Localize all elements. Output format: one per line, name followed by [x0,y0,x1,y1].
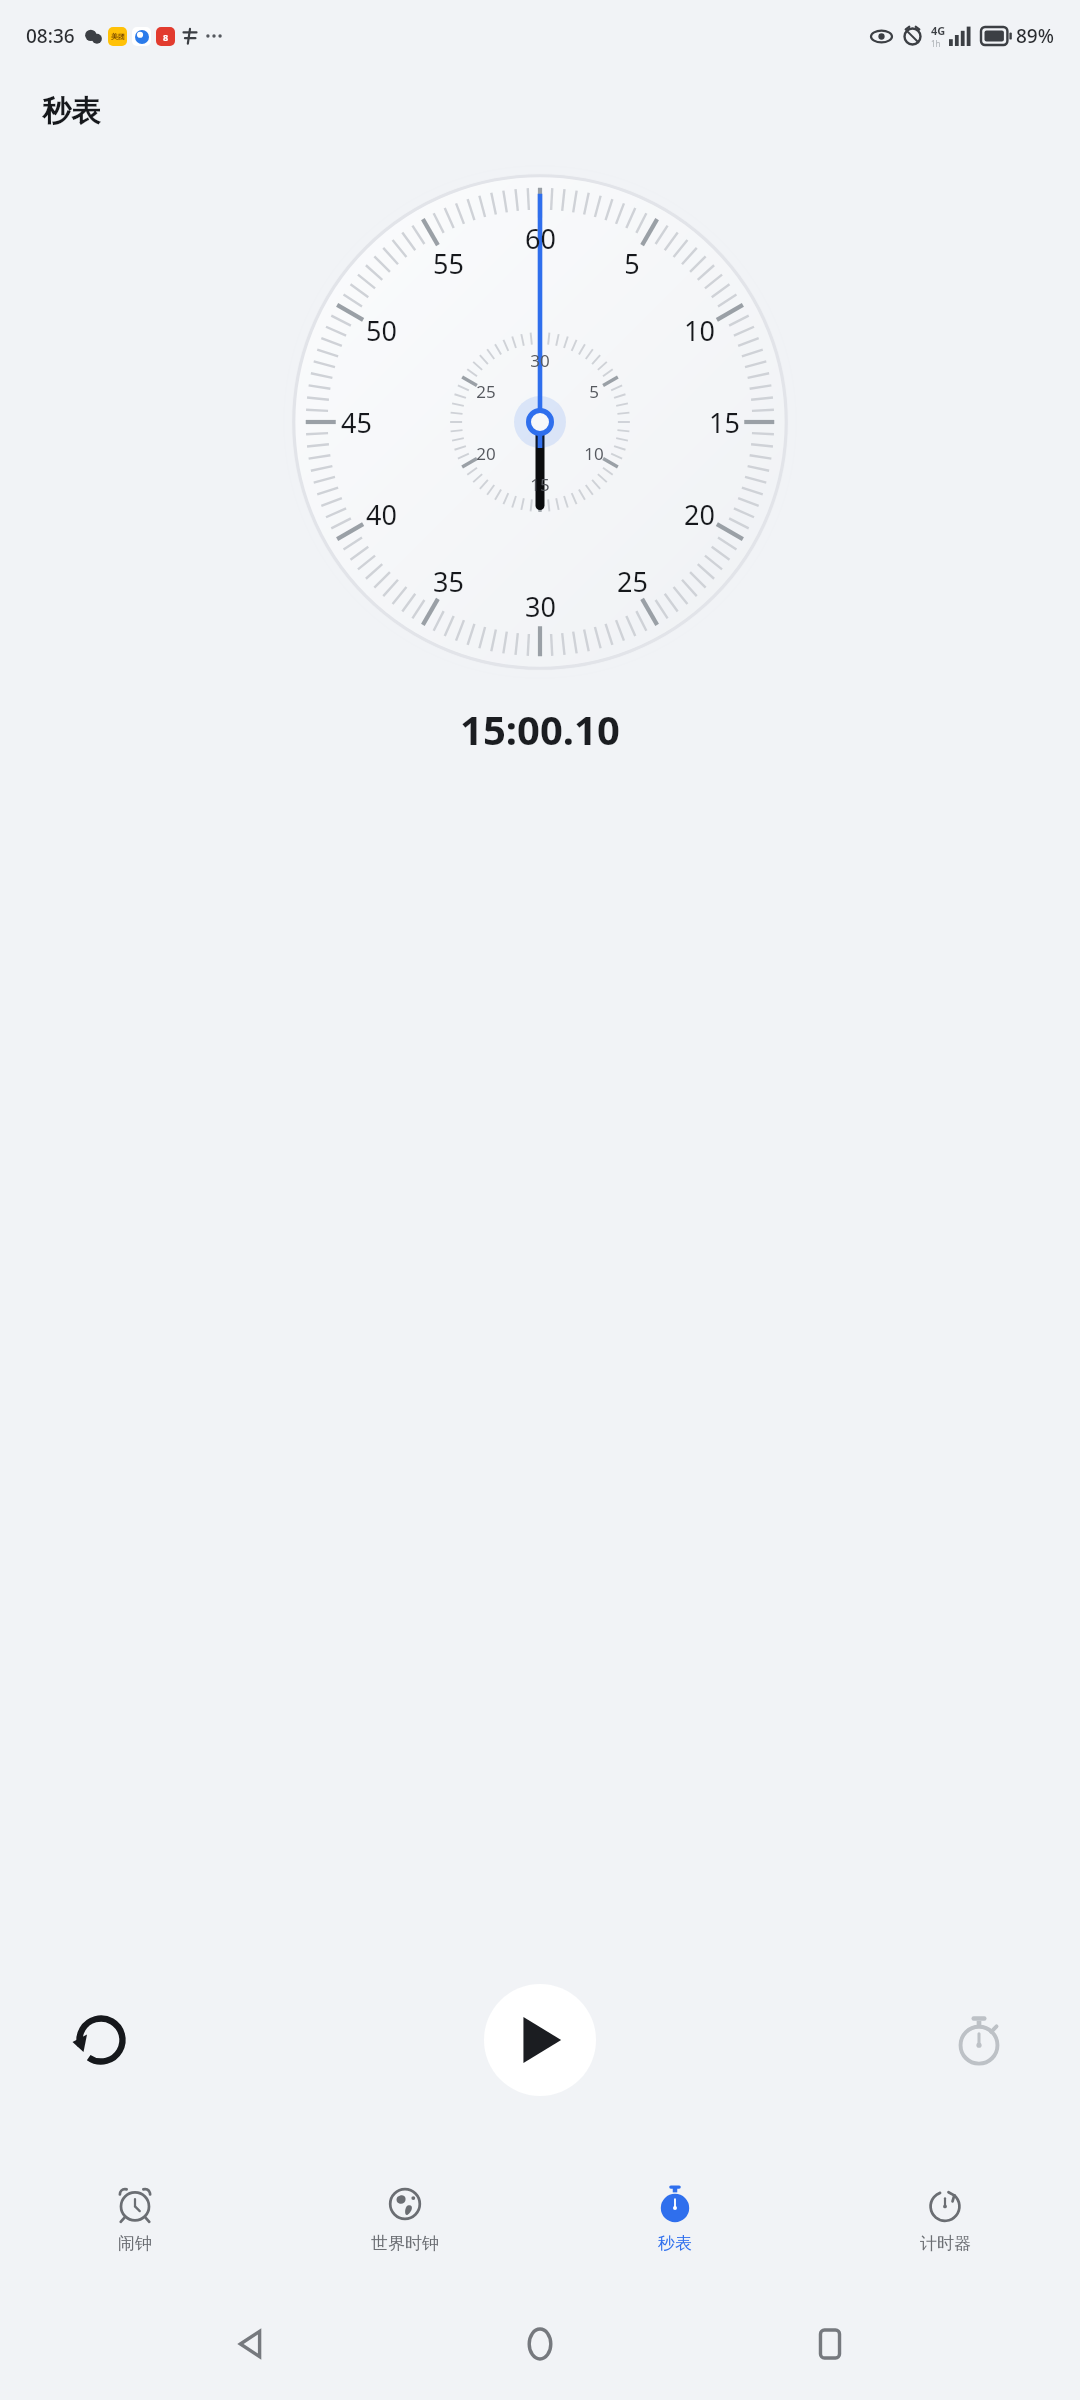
button[interactable]: 闹钟 [0,2150,270,2288]
button[interactable]: 秒表 [540,2150,810,2288]
button[interactable]: 世界时钟 [270,2150,540,2288]
button[interactable]: Reset [58,1997,144,2083]
button[interactable]: Back [210,2304,290,2384]
button[interactable]: Home [500,2304,580,2384]
staticText: 50 [366,312,397,349]
staticText: 10 [684,312,715,349]
staticText: 25 [476,380,496,403]
staticText: 5 [589,380,599,403]
button[interactable]: Recents [790,2304,870,2384]
staticText: 35 [433,563,464,600]
staticText: 世界时钟 [371,2233,439,2254]
staticText: 秒表 [42,93,100,130]
staticText: 计时器 [920,2233,971,2254]
staticText: 89% [1016,23,1054,49]
staticText: 30 [525,588,556,625]
staticText: 45 [341,404,372,441]
staticText: 20 [476,442,496,465]
staticText: 1h [931,38,941,49]
staticText: 15 [709,404,740,441]
staticText: 10 [584,442,604,465]
staticText: 闹钟 [118,2233,152,2254]
button[interactable]: 计时器 [810,2150,1080,2288]
staticText: 30 [530,349,550,372]
staticText: 40 [366,496,397,533]
staticText: 秒表 [658,2233,692,2254]
staticText: 8 [163,31,169,43]
staticText: 5 [624,245,640,282]
staticText: 25 [617,563,648,600]
button[interactable]: Lap [936,1997,1022,2083]
staticText: 15 [530,473,550,496]
staticText: 55 [433,245,464,282]
staticText: 60 [525,220,556,257]
staticText: 15:00.10 [460,702,620,756]
staticText: 4G [931,23,946,38]
staticText: 08:36 [26,23,75,49]
staticText: 20 [684,496,715,533]
staticText: 美团 [111,32,125,41]
button[interactable]: Start [484,1984,596,2096]
